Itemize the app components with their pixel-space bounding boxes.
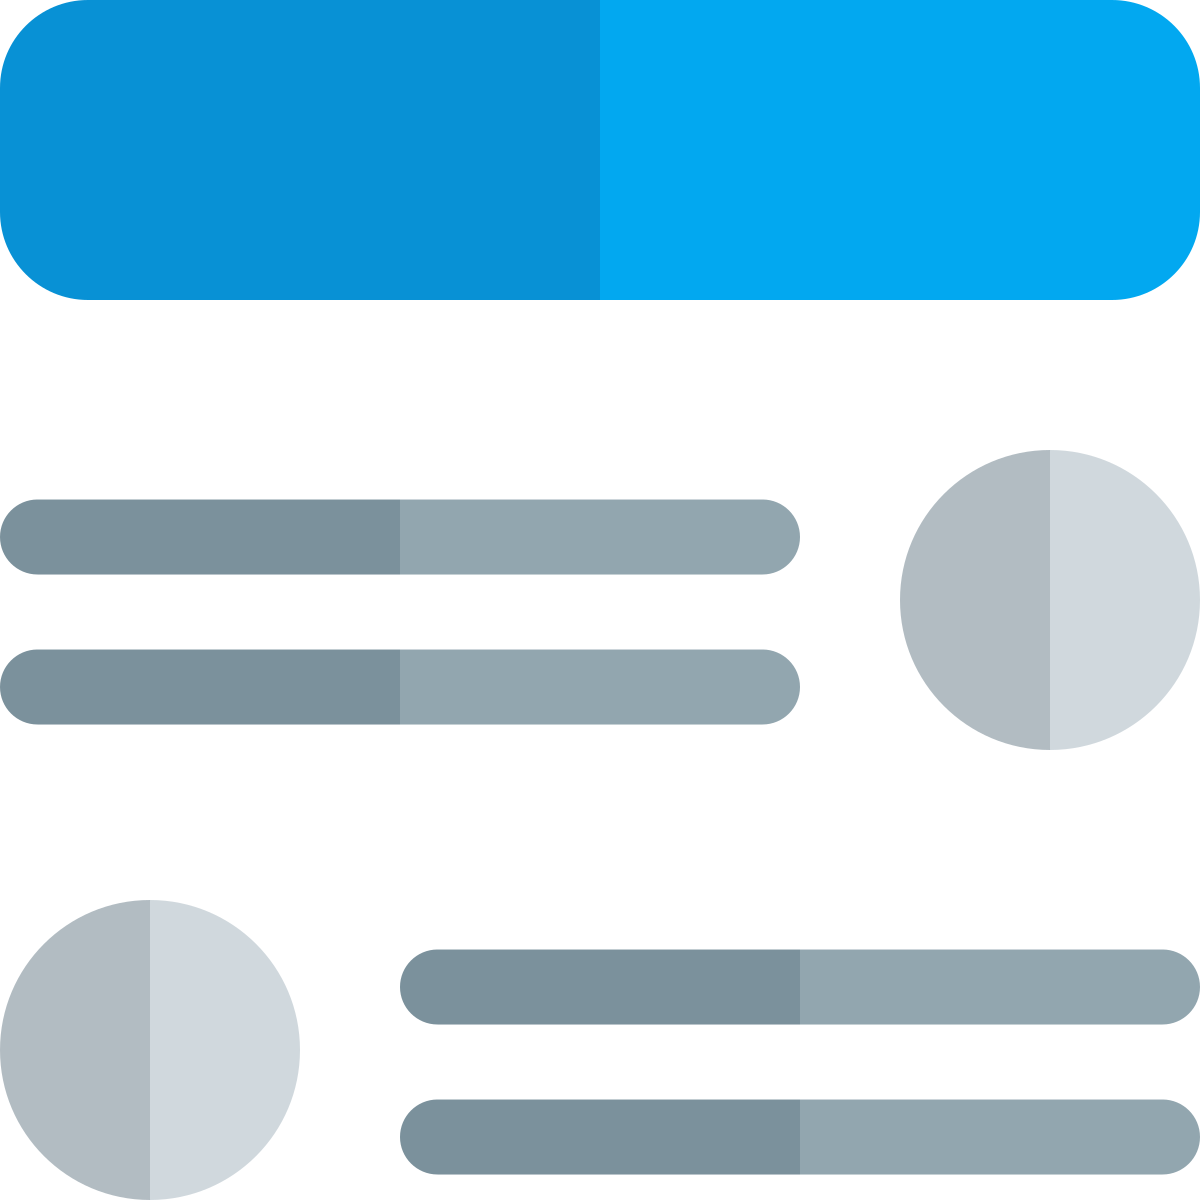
button[interactable]: First article (0, 450, 1200, 750)
button[interactable]: Featured story banner (0, 0, 1200, 300)
button[interactable]: Second article (0, 900, 1200, 1200)
